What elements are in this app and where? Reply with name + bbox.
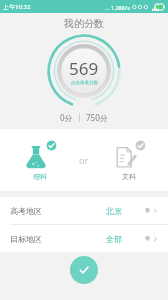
staticText: 全部: [106, 234, 122, 244]
staticText: 点击修改分数: [71, 80, 98, 86]
staticText: 理科: [33, 172, 47, 181]
button[interactable]: 理科: [17, 138, 63, 183]
staticText: 0分: [60, 112, 73, 123]
button[interactable]: 目标地区: [0, 225, 168, 252]
button[interactable]: 文科: [106, 138, 152, 183]
staticText: … 1.28K/s: [105, 4, 130, 11]
staticText: 上午10:32: [3, 3, 31, 11]
staticText: 北京: [106, 206, 122, 216]
staticText: or: [79, 154, 89, 166]
button[interactable]: 高考地区: [0, 197, 168, 224]
staticText: 750分: [86, 112, 108, 123]
staticText: 高考地区: [10, 206, 42, 216]
staticText: 569: [69, 57, 99, 80]
staticText: 我的分数: [64, 17, 104, 30]
button[interactable]: 确定: [70, 256, 98, 284]
staticText: 目标地区: [10, 234, 42, 244]
staticText: 文科: [122, 172, 136, 181]
